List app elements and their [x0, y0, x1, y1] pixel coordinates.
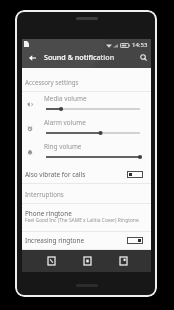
staticText: Also vibrate for calls: [25, 170, 86, 179]
button[interactable]: Back: [23, 47, 41, 68]
button[interactable]: Recents: [116, 250, 130, 272]
staticText: Alarm volume: [44, 118, 86, 127]
button[interactable]: Home: [80, 250, 94, 272]
button[interactable]: Ring volume: [22, 140, 151, 164]
staticText: Sound & notification: [44, 52, 115, 62]
button[interactable]: Search: [136, 47, 151, 68]
staticText: Media volume: [44, 94, 87, 103]
button[interactable]: Media volume: [22, 92, 151, 116]
staticText: Phone ringtone: [25, 209, 72, 218]
staticText: Interruptions: [25, 190, 64, 198]
staticText: 14:53: [132, 41, 148, 49]
staticText: Accessory settings: [25, 78, 79, 86]
button[interactable]: Back: [44, 250, 58, 272]
button[interactable]: Phone ringtone: [22, 204, 151, 232]
staticText: Increasing ringtone: [25, 236, 85, 245]
staticText: Feel Good Inc (The SAME x Lalitia Cover)…: [25, 217, 139, 224]
button[interactable]: Alarm volume: [22, 116, 151, 140]
staticText: Ring volume: [44, 142, 82, 151]
button[interactable]: Also vibrate for calls: [22, 165, 151, 184]
button[interactable]: Increasing ringtone: [22, 231, 151, 250]
